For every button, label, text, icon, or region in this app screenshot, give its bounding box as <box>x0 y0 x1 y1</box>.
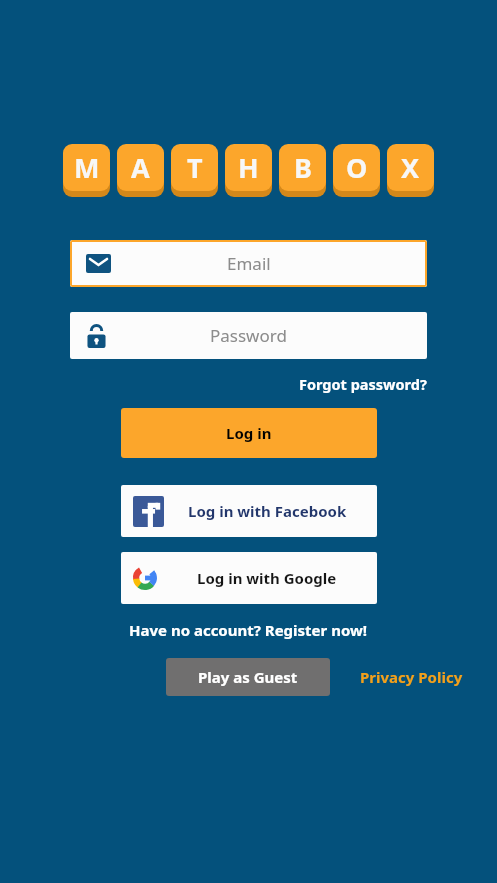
staticText: B <box>294 149 312 186</box>
staticText: O <box>346 149 368 186</box>
staticText: A <box>131 149 150 186</box>
staticText: Log in with Facebook <box>188 501 347 521</box>
staticText: X <box>401 149 420 186</box>
button[interactable]: Log in with Google <box>121 552 377 604</box>
button[interactable]: Have no account? Register now! <box>129 620 368 640</box>
staticText: Password <box>210 324 287 347</box>
staticText: Log in <box>226 423 272 443</box>
button[interactable]: Password <box>70 312 427 359</box>
staticText: Log in with Google <box>197 568 337 588</box>
staticText: Play as Guest <box>198 667 298 687</box>
button[interactable]: Play as Guest <box>166 658 330 696</box>
button[interactable]: Log in with Facebook <box>121 485 377 537</box>
button[interactable]: Forgot password? <box>299 374 427 394</box>
staticText: H <box>238 149 259 186</box>
button[interactable]: Privacy Policy <box>360 667 463 687</box>
staticText: T <box>187 149 203 186</box>
button[interactable]: Email <box>70 240 427 287</box>
button[interactable]: Log in <box>121 408 377 458</box>
staticText: M <box>74 149 100 186</box>
staticText: Email <box>227 252 271 275</box>
